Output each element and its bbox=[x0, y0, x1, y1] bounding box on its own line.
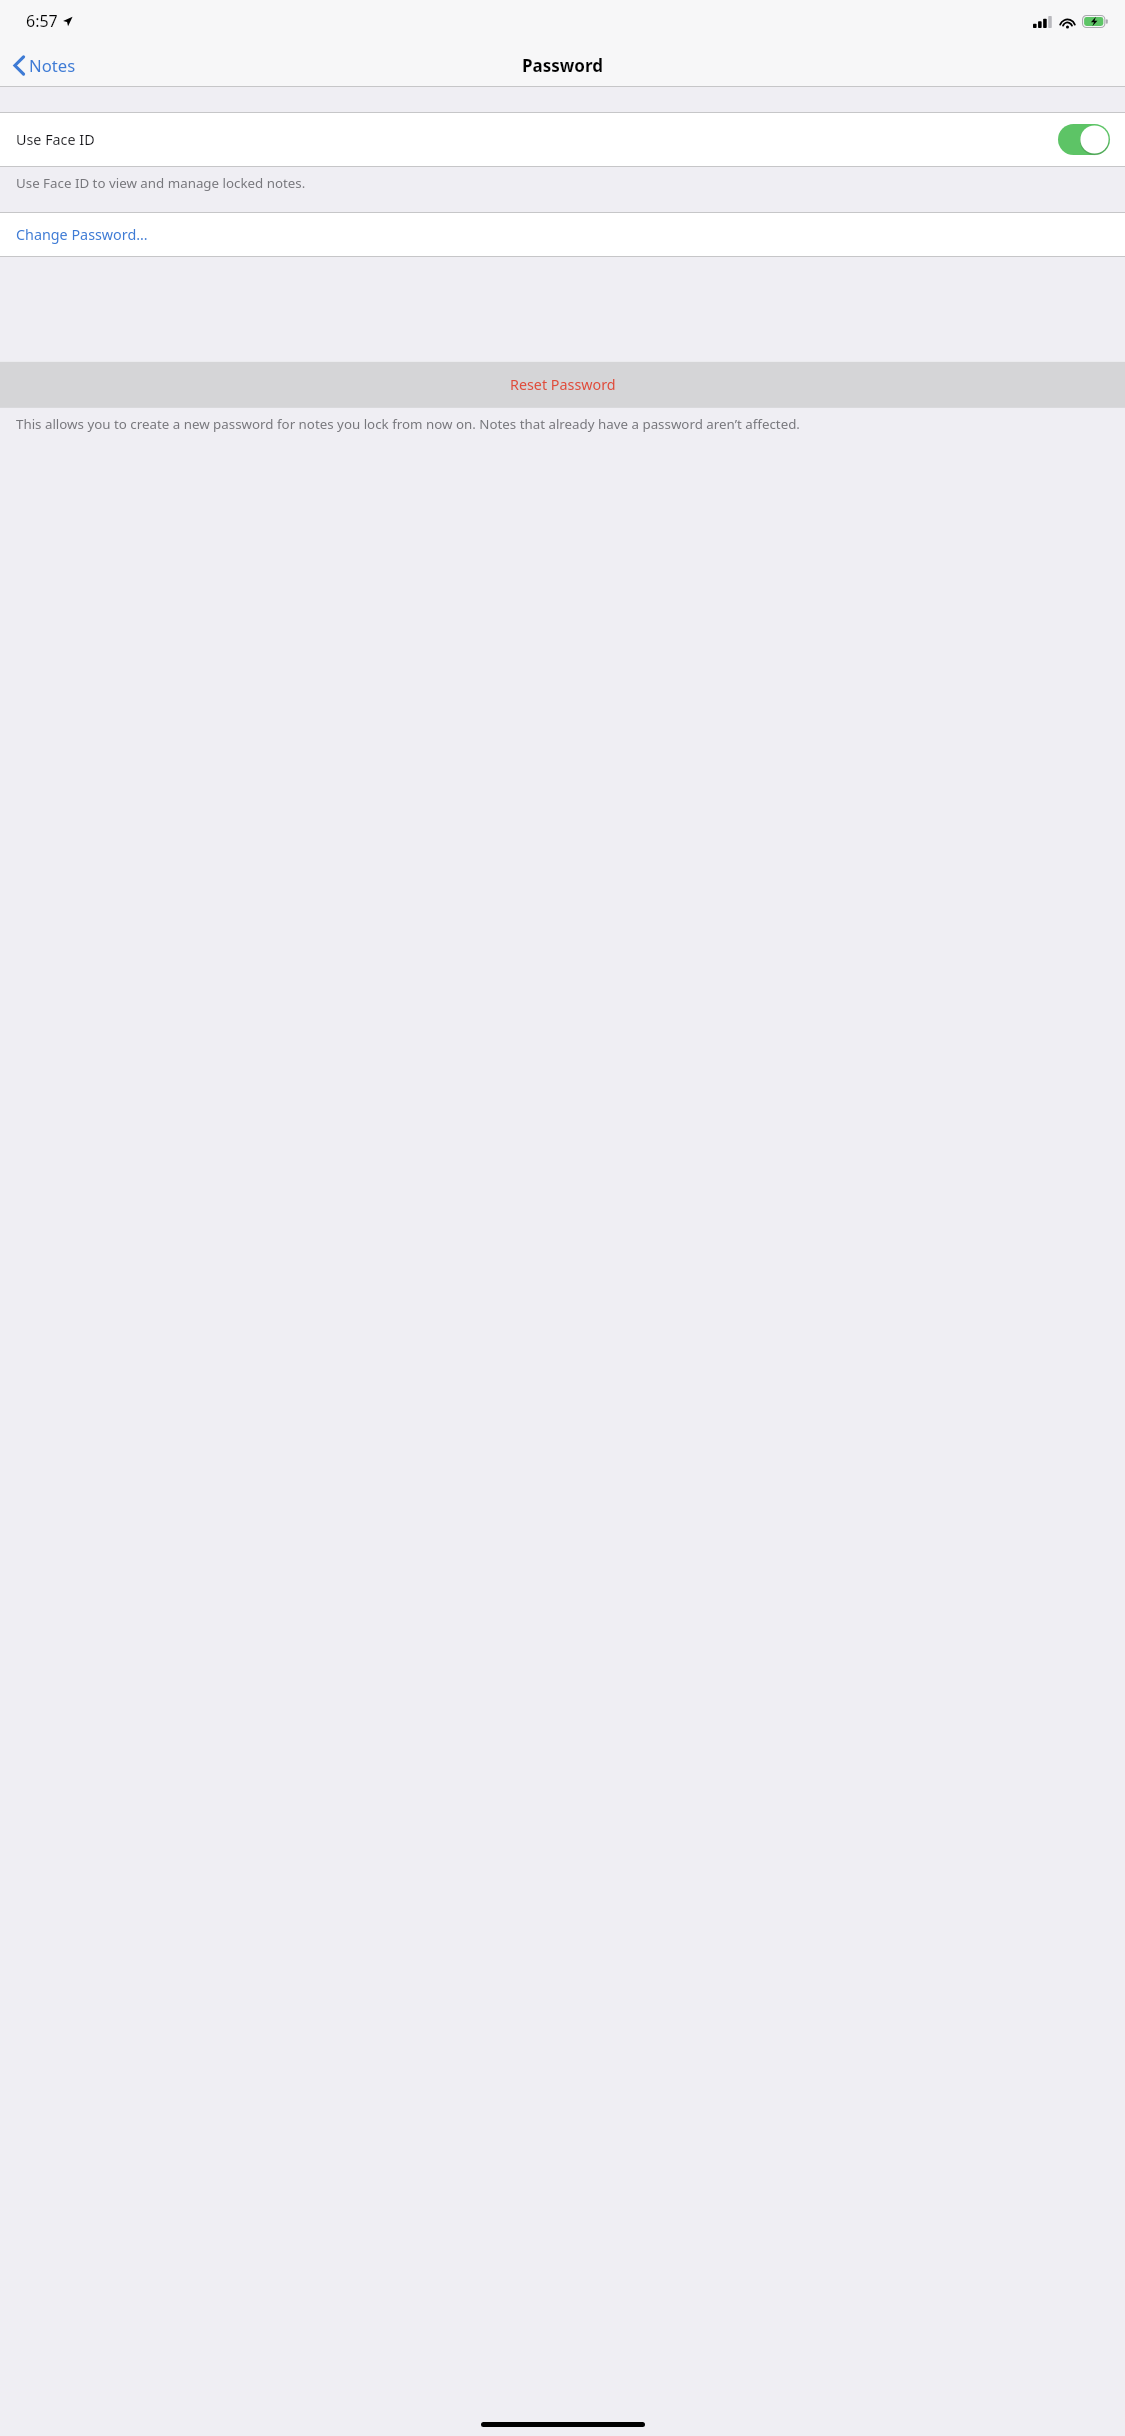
button[interactable]: Notes bbox=[13, 54, 76, 77]
staticText: This allows you to create a new password… bbox=[16, 415, 800, 433]
staticText: Password bbox=[522, 54, 603, 77]
staticText: Reset Password bbox=[510, 375, 616, 395]
staticText: Use Face ID bbox=[16, 130, 95, 150]
button[interactable]: Use Face ID bbox=[0, 113, 1125, 166]
staticText: Change Password… bbox=[16, 225, 148, 245]
staticText: Use Face ID to view and manage locked no… bbox=[16, 174, 306, 192]
button[interactable]: Use Face ID toggle, on bbox=[1058, 124, 1110, 155]
button[interactable]: Change Password… bbox=[0, 213, 1125, 256]
button[interactable]: Reset Password bbox=[0, 362, 1125, 407]
staticText: Notes bbox=[29, 54, 76, 77]
staticText: 6:57 bbox=[26, 10, 58, 32]
